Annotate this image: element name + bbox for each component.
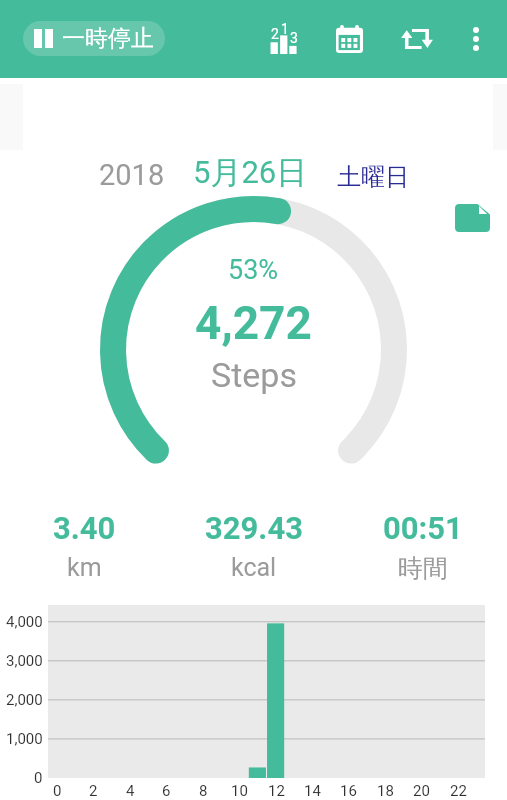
staticText: 329.43 [205, 510, 303, 546]
staticText: 20 [413, 782, 430, 800]
staticText: 22 [450, 782, 467, 800]
staticText: 0 [53, 782, 62, 800]
staticText: 2 [89, 782, 98, 800]
staticText: 6 [162, 782, 171, 800]
staticText: 1 [281, 21, 289, 37]
staticText: 3,000 [6, 652, 43, 670]
button[interactable]: Ranking [259, 15, 307, 63]
button[interactable]: Sync [393, 15, 441, 63]
staticText: 4 [126, 782, 135, 800]
staticText: 16 [340, 782, 357, 800]
staticText: 1,000 [6, 730, 43, 748]
staticText: 00:51 [383, 510, 463, 546]
button[interactable]: Memo [448, 194, 496, 242]
staticText: 2,000 [6, 691, 43, 709]
staticText: kcal [231, 553, 277, 582]
staticText: km [67, 553, 102, 582]
button[interactable]: Calendar [325, 15, 373, 63]
staticText: 4,000 [6, 613, 43, 631]
staticText: 0 [34, 769, 43, 787]
staticText: 53% [228, 254, 279, 286]
button[interactable]: 一時停止 [23, 21, 165, 56]
staticText: 4,272 [195, 296, 312, 350]
staticText: 3.40 [53, 510, 116, 546]
staticText: 8 [199, 782, 208, 800]
staticText: 18 [377, 782, 394, 800]
staticText: 土曜日 [337, 162, 409, 192]
staticText: 2018 [99, 158, 165, 192]
staticText: 5月26日 [193, 153, 308, 192]
button[interactable]: More options [452, 15, 500, 63]
staticText: 一時停止 [62, 24, 154, 53]
staticText: 時間 [398, 553, 448, 584]
staticText: 14 [304, 782, 321, 800]
staticText: 2 [271, 26, 279, 42]
staticText: 12 [268, 782, 285, 800]
staticText: Steps [211, 355, 297, 395]
staticText: 10 [231, 782, 248, 800]
staticText: 3 [290, 30, 298, 46]
